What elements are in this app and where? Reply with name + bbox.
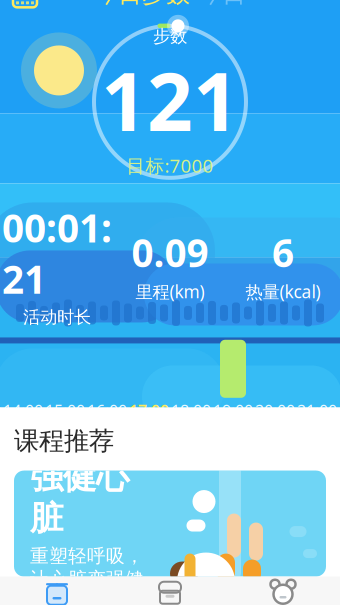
staticText: 20:00 [255, 400, 295, 421]
staticText: 今日步数 [94, 0, 190, 9]
staticText: 热量(kcal) [245, 280, 320, 303]
staticText: 15:00 [45, 400, 85, 421]
staticText: 16:00 [87, 400, 127, 421]
button[interactable]: 我的 [226, 577, 339, 605]
button[interactable]: 首页 [0, 577, 113, 605]
staticText: 强健心脏 [30, 457, 129, 539]
staticText: 课程推荐 [14, 425, 114, 456]
staticText: 121 [101, 47, 239, 153]
staticText: 19:00 [213, 400, 253, 421]
staticText: 21:00 [297, 400, 337, 421]
staticText: 活动时长 [23, 306, 91, 328]
staticText: 步数 [153, 26, 187, 47]
button[interactable]: 日历 [4, 0, 46, 15]
staticText: 重塑轻呼吸，让心脏变强健 [30, 545, 144, 590]
staticText: 目标:7000 [126, 153, 213, 178]
staticText: 6 [272, 227, 294, 278]
staticText: 18:00 [171, 400, 211, 421]
staticText: 00:01:21 [2, 202, 112, 304]
button[interactable]: 强健心脏 [14, 471, 326, 577]
staticText: 今日 [198, 0, 246, 9]
button[interactable]: 商场 [113, 577, 226, 605]
staticText: 17:00 [129, 400, 169, 421]
staticText: 0.09 [131, 227, 208, 278]
staticText: 14:00 [3, 400, 43, 421]
staticText: 里程(km) [135, 280, 204, 303]
